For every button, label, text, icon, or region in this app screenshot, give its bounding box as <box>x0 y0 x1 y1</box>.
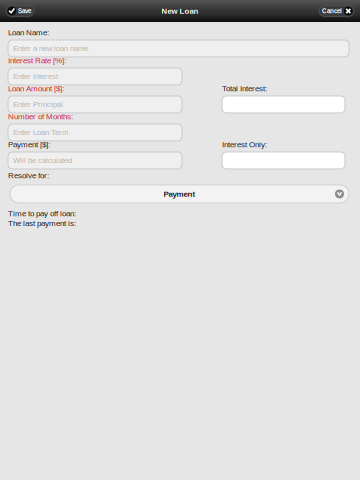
staticText: Loan Amount [$]: <box>8 84 64 93</box>
staticText: The last payment is: <box>8 219 76 228</box>
staticText: Enter a new loan name <box>13 44 88 53</box>
staticText: Payment <box>163 189 195 198</box>
staticText: Enter Interest <box>13 72 58 81</box>
staticText: New Loan <box>161 7 198 15</box>
staticText: Interest Only: <box>222 140 267 149</box>
staticText: Cancel <box>322 7 342 14</box>
staticText: Interest Rate [%]: <box>8 56 66 65</box>
staticText: Resolve for: <box>8 171 49 180</box>
staticText: Save <box>18 7 31 14</box>
staticText: Loan Name: <box>8 28 49 37</box>
staticText: Number of Months: <box>8 112 73 121</box>
staticText: Will be calculated <box>13 156 72 165</box>
staticText: Total Interest: <box>222 84 267 93</box>
button[interactable]: Payment <box>10 185 349 203</box>
staticText: Payment [$]: <box>8 140 50 149</box>
staticText: Time to pay off loan: <box>8 209 76 218</box>
staticText: Enter Principal <box>13 100 63 109</box>
button[interactable]: Save <box>6 5 34 16</box>
button[interactable]: Cancel <box>319 5 354 16</box>
staticText: Enter Loan Term <box>13 128 68 137</box>
